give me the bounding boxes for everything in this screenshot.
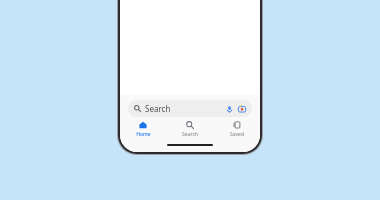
button[interactable]: Voice search (223, 103, 235, 115)
button[interactable]: Home (120, 120, 166, 138)
button[interactable]: Google Lens (236, 103, 248, 115)
staticText: Home (136, 131, 151, 138)
staticText: Search (182, 131, 198, 138)
button[interactable]: Search (166, 120, 213, 138)
button[interactable]: Search (128, 100, 252, 117)
staticText: Search (145, 103, 171, 114)
staticText: Saved (230, 131, 244, 138)
button[interactable]: Saved (213, 120, 260, 138)
